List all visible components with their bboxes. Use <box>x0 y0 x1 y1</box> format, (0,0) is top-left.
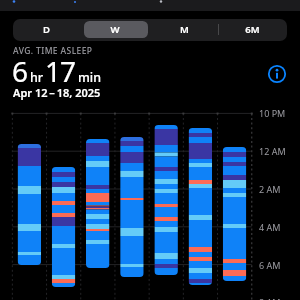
staticText: AVG. TIME ASLEEP <box>13 45 93 57</box>
staticText: D <box>43 23 50 36</box>
staticText: Apr 12 – 18, 2025 <box>13 85 101 100</box>
staticText: 2 AM <box>259 183 281 195</box>
staticText: 10 PM <box>259 107 286 119</box>
staticText: hr <box>30 69 44 86</box>
staticText: 12 AM <box>259 145 286 157</box>
staticText: min <box>78 69 102 86</box>
staticText: 6 AM <box>259 259 281 271</box>
staticText: 17 <box>45 52 76 90</box>
staticText: W <box>110 23 120 36</box>
staticText: 6M <box>245 23 260 36</box>
staticText: 8 AM <box>259 296 281 300</box>
staticText: 4 AM <box>259 221 281 233</box>
staticText: M <box>180 23 189 36</box>
staticText: 6 <box>12 52 28 90</box>
